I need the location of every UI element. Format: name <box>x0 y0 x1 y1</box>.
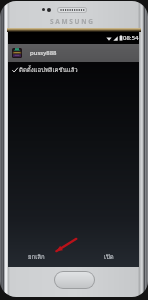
staticText: ติดตั้งแอปพลิเคชันแล้ว <box>19 65 78 75</box>
staticText: 08:54 <box>123 34 139 42</box>
staticText: SAMSUNG <box>50 17 95 26</box>
button[interactable]: pussy888 <box>8 44 139 62</box>
staticText: เปิด <box>104 252 114 262</box>
staticText: pussy888 <box>30 49 57 57</box>
staticText: ยกเลิก <box>28 252 45 262</box>
button[interactable]: ยกเลิก <box>15 248 58 265</box>
button[interactable]: เปิด <box>87 248 130 265</box>
